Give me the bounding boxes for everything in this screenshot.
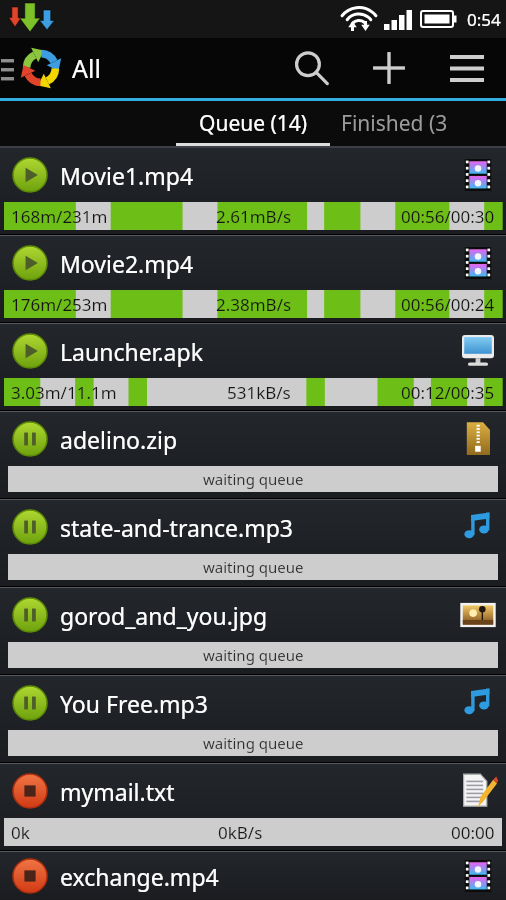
button[interactable]: Launcher.apk <box>0 324 506 410</box>
button[interactable]: Add download <box>350 38 428 98</box>
staticText: Movie1.mp4 <box>60 160 454 191</box>
staticText: Queue (14) <box>199 109 308 138</box>
button[interactable]: gorod_and_you.jpg <box>0 588 506 674</box>
staticText: Movie2.mp4 <box>60 248 454 279</box>
staticText: 00:56/00:24 <box>401 293 495 316</box>
staticText: 2.61mB/s <box>216 205 292 228</box>
button[interactable]: exchange.mp4 <box>0 852 506 900</box>
button[interactable]: Queue (14) <box>170 101 336 146</box>
staticText: adelino.zip <box>60 424 454 455</box>
staticText: Launcher.apk <box>60 336 454 367</box>
staticText: All <box>72 51 101 85</box>
staticText: 0kB/s <box>218 821 263 844</box>
staticText: waiting queue <box>203 469 304 489</box>
staticText: 00:12/00:35 <box>401 381 495 404</box>
staticText: You Free.mp3 <box>60 688 454 719</box>
staticText: 2.38mB/s <box>216 293 292 316</box>
staticText: exchange.mp4 <box>60 861 454 892</box>
button[interactable]: mymail.txt <box>0 764 506 850</box>
staticText: Finished (3 <box>341 109 448 138</box>
button[interactable]: You Free.mp3 <box>0 676 506 762</box>
staticText: 168m/231m <box>11 205 108 228</box>
staticText: 176m/253m <box>11 293 108 316</box>
staticText: waiting queue <box>203 557 304 577</box>
button[interactable]: Finished (3 <box>336 101 506 146</box>
button[interactable]: All <box>0 38 107 98</box>
staticText: 00:00 <box>451 821 495 844</box>
staticText: 531kB/s <box>227 381 291 404</box>
staticText: waiting queue <box>203 733 304 753</box>
button[interactable]: state-and-trance.mp3 <box>0 500 506 586</box>
staticText: gorod_and_you.jpg <box>60 600 454 631</box>
staticText: state-and-trance.mp3 <box>60 512 454 543</box>
button[interactable]: Movie1.mp4 <box>0 148 506 234</box>
button[interactable]: adelino.zip <box>0 412 506 498</box>
button[interactable]: Movie2.mp4 <box>0 236 506 322</box>
button[interactable]: Search <box>272 38 350 98</box>
staticText: 00:56/00:30 <box>401 205 495 228</box>
staticText: 0k <box>11 821 30 844</box>
staticText: mymail.txt <box>60 776 454 807</box>
button[interactable]: More options <box>428 38 506 98</box>
staticText: 3.03m/11.1m <box>11 381 117 404</box>
staticText: 0:54 <box>467 8 501 31</box>
staticText: waiting queue <box>203 645 304 665</box>
